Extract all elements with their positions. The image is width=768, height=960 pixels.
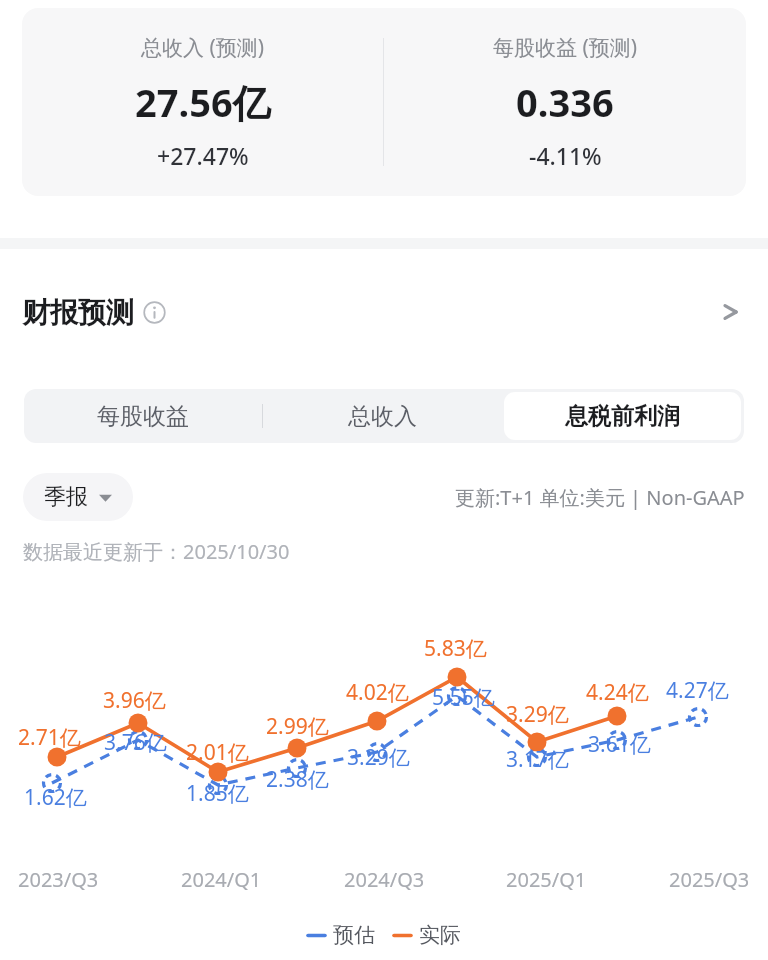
button[interactable]: 每股收益 (预测) [384, 8, 746, 196]
staticText: 息税前利润 [565, 402, 680, 431]
staticText: 预估 [333, 922, 375, 948]
staticText: 2.01亿 [186, 738, 249, 767]
staticText: 每股收益 [97, 402, 189, 431]
staticText: 3.61亿 [588, 730, 651, 759]
staticText: 2024/Q3 [344, 866, 425, 893]
button[interactable]: 总收入 [266, 392, 498, 440]
button[interactable]: 财报预测 [0, 283, 768, 341]
staticText: 季报 [44, 483, 88, 511]
staticText: 3.76亿 [104, 728, 167, 757]
button[interactable]: 总收入 (预测) [22, 8, 383, 196]
button[interactable]: 息税前利润 [504, 392, 741, 440]
staticText: 更新:T+1 单位:美元 | Non-GAAP [455, 484, 745, 511]
staticText: 4.27亿 [666, 676, 729, 705]
staticText: 0.336 [516, 76, 614, 128]
staticText: +27.47% [157, 140, 249, 171]
button[interactable]: 季报 [23, 473, 133, 521]
staticText: -4.11% [529, 140, 602, 171]
staticText: 财报预测 [22, 295, 134, 330]
staticText: 5.83亿 [424, 634, 487, 663]
staticText: 数据最近更新于：2025/10/30 [23, 538, 290, 565]
staticText: 3.29亿 [347, 743, 410, 772]
staticText: 27.56亿 [135, 76, 271, 128]
staticText: 2.99亿 [266, 712, 329, 741]
staticText: 1.85亿 [186, 779, 249, 808]
staticText: 5.55亿 [432, 683, 495, 712]
button[interactable]: 每股收益 [27, 392, 259, 440]
staticText: 总收入 [348, 402, 417, 431]
staticText: 2025/Q3 [669, 866, 750, 893]
staticText: 3.17亿 [506, 745, 569, 774]
staticText: 3.96亿 [103, 686, 166, 715]
staticText: 2.38亿 [266, 765, 329, 794]
staticText: 每股收益 (预测) [493, 33, 638, 62]
staticText: 总收入 (预测) [141, 33, 265, 62]
staticText: 3.29亿 [506, 700, 569, 729]
staticText: 2.71亿 [18, 723, 81, 752]
staticText: 实际 [419, 922, 461, 948]
button[interactable]: 总收入 (预测) [22, 8, 746, 196]
staticText: 2025/Q1 [506, 866, 587, 893]
other: View details [718, 298, 746, 326]
staticText: 1.62亿 [24, 783, 87, 812]
staticText: 2024/Q1 [181, 866, 262, 893]
staticText: 2023/Q3 [18, 866, 99, 893]
staticText: 4.24亿 [586, 678, 649, 707]
staticText: 4.02亿 [346, 678, 409, 707]
